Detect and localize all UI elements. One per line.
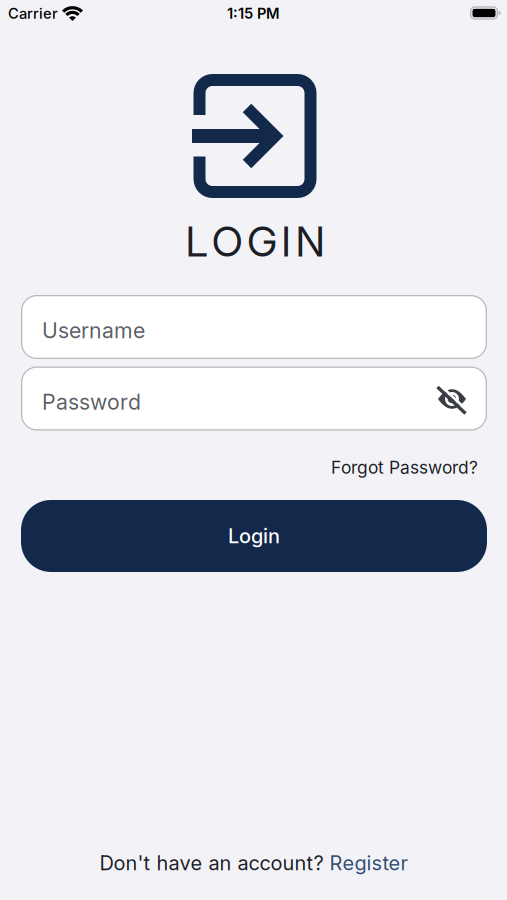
button[interactable]: Forgot Password?	[331, 457, 478, 478]
button[interactable]: Register	[329, 851, 407, 875]
staticText: I	[281, 217, 291, 266]
staticText: Username	[42, 318, 145, 343]
button[interactable]: Password	[21, 366, 487, 430]
staticText: G	[247, 217, 277, 266]
staticText: Register	[329, 851, 407, 875]
staticText: O	[212, 217, 243, 266]
staticText: Login	[228, 524, 280, 548]
staticText: Don't have an account?	[99, 851, 323, 875]
staticText: 1:15 PM	[227, 5, 280, 22]
button[interactable]: Show password	[435, 384, 469, 414]
staticText: L	[185, 217, 207, 266]
button[interactable]: Username	[21, 295, 487, 359]
staticText: N	[296, 217, 325, 266]
button[interactable]: Login	[21, 500, 487, 572]
staticText: Carrier	[8, 5, 58, 22]
staticText: Forgot Password?	[331, 457, 478, 478]
staticText: Password	[42, 389, 141, 415]
